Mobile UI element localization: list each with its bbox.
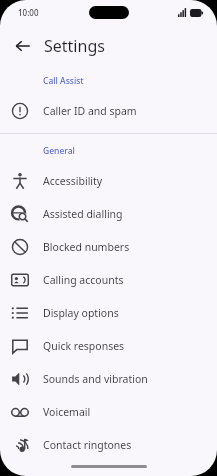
staticText: Blocked numbers <box>43 240 130 254</box>
button[interactable]: Contact ringtones <box>0 428 217 461</box>
button[interactable]: Quick responses <box>0 329 217 362</box>
staticText: Quick responses <box>43 339 125 353</box>
staticText: Call Assist <box>43 75 84 87</box>
staticText: Contact ringtones <box>43 438 132 452</box>
button[interactable]: Calling accounts <box>0 263 217 296</box>
staticText: 10:00 <box>18 7 39 18</box>
button[interactable]: Caller ID and spam <box>0 94 217 127</box>
button[interactable]: Display options <box>0 296 217 329</box>
button[interactable]: Assisted dialling <box>0 197 217 230</box>
staticText: Display options <box>43 306 119 320</box>
staticText: Calling accounts <box>43 273 124 287</box>
staticText: Sounds and vibration <box>43 372 148 386</box>
staticText: Settings <box>44 35 105 57</box>
staticText: Voicemail <box>43 405 91 419</box>
staticText: Accessibility <box>43 174 103 188</box>
button[interactable]: Voicemail <box>0 395 217 428</box>
button[interactable]: Blocked numbers <box>0 230 217 263</box>
button[interactable]: Back <box>6 29 40 63</box>
button[interactable]: Accessibility <box>0 164 217 197</box>
staticText: Caller ID and spam <box>43 104 137 118</box>
staticText: Assisted dialling <box>43 207 123 221</box>
button[interactable]: Sounds and vibration <box>0 362 217 395</box>
staticText: General <box>43 145 75 157</box>
